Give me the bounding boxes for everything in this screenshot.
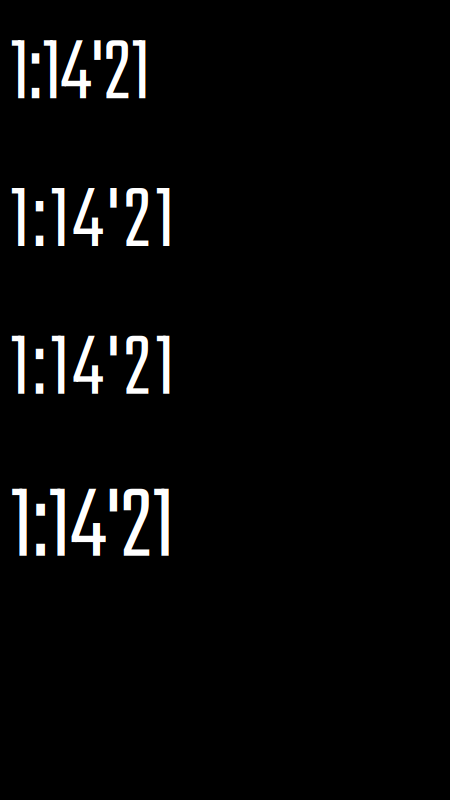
staticText: 1:14'21 <box>10 158 174 290</box>
staticText: 1:14'21 <box>10 306 174 437</box>
staticText: 1:14'21 <box>10 453 175 606</box>
staticText: 1:14'21 <box>10 10 150 142</box>
